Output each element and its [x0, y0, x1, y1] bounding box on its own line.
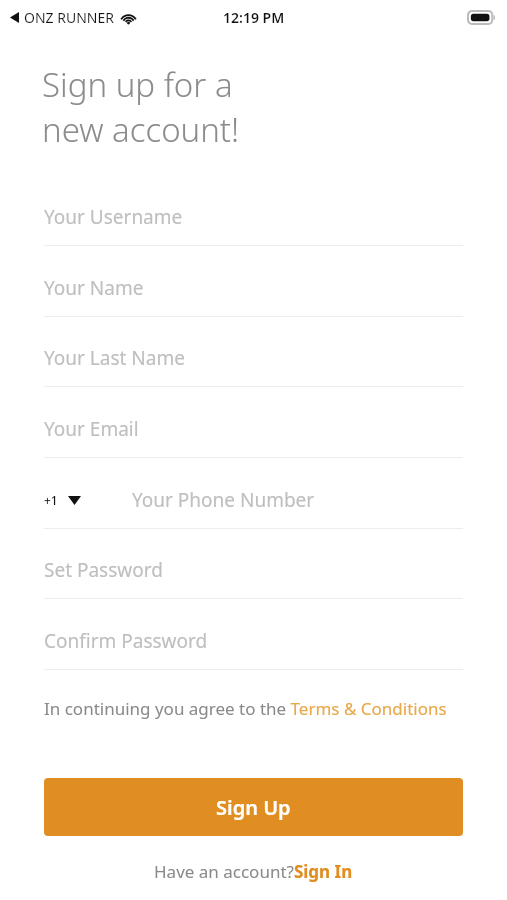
staticText: ONZ RUNNER [24, 8, 114, 27]
button[interactable]: Your Email [44, 401, 463, 457]
staticText: Have an account?Sign In [154, 860, 353, 883]
button[interactable]: Set Password [44, 542, 463, 598]
staticText: Your Last Name [44, 345, 185, 371]
button[interactable]: Your Username [44, 189, 463, 245]
staticText: In continuing you agree to the Terms & C… [44, 697, 447, 720]
staticText: new account! [42, 107, 240, 152]
staticText: Confirm Password [44, 628, 208, 654]
button[interactable]: Your Last Name [44, 330, 463, 386]
button[interactable]: Confirm Password [44, 613, 463, 669]
staticText: Sign up for a [42, 62, 233, 107]
button[interactable]: Your Name [44, 260, 463, 316]
button[interactable]: Your Phone Number [132, 472, 507, 528]
staticText: 12:19 PM [223, 8, 285, 27]
button[interactable]: In continuing you agree to the Terms & C… [44, 697, 463, 720]
staticText: Your Email [44, 416, 139, 442]
button[interactable]: Sign Up [44, 778, 463, 836]
button[interactable]: Select country code [44, 472, 100, 528]
staticText: Sign Up [216, 794, 291, 821]
staticText: +1 [44, 492, 58, 508]
staticText: Set Password [44, 557, 163, 583]
staticText: Your Name [44, 275, 144, 301]
staticText: Your Phone Number [132, 487, 315, 513]
staticText: Your Username [44, 204, 183, 230]
button[interactable]: Have an account?Sign In [154, 860, 353, 883]
